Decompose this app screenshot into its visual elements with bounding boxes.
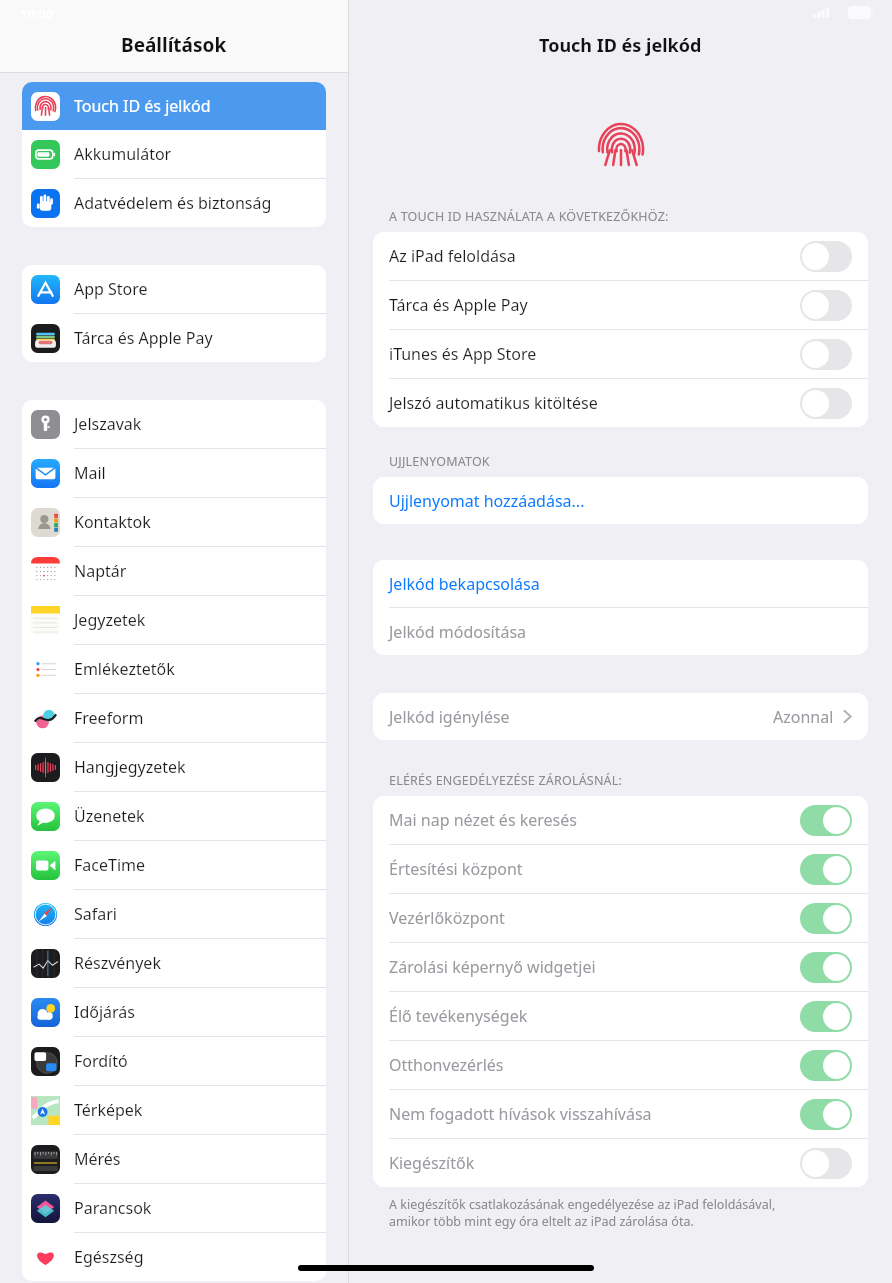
button[interactable]: Mérés xyxy=(22,1135,326,1184)
staticText: Jelszavak xyxy=(74,413,142,435)
staticText: Kontaktok xyxy=(74,511,151,533)
button[interactable]: On xyxy=(800,1099,852,1130)
button[interactable]: App Store xyxy=(22,265,326,314)
button[interactable]: Az iPad feloldása xyxy=(373,232,868,281)
button[interactable]: Off xyxy=(800,1148,852,1179)
button[interactable]: Freeform xyxy=(22,694,326,743)
staticText: Tárca és Apple Pay xyxy=(74,327,213,349)
button[interactable]: Ujjlenyomat hozzáadása... xyxy=(373,477,868,524)
button[interactable]: Akkumulátor xyxy=(22,130,326,179)
button[interactable]: Zárolási képernyő widgetjei xyxy=(373,943,868,992)
button[interactable]: On xyxy=(800,1001,852,1032)
button[interactable]: FaceTime xyxy=(22,841,326,890)
staticText: ELÉRÉS ENGEDÉLYEZÉSE ZÁROLÁSNÁL: xyxy=(389,772,623,789)
staticText: Ujjlenyomat hozzáadása... xyxy=(389,490,585,512)
button[interactable]: Otthonvezérlés xyxy=(373,1041,868,1090)
staticText: Azonnal xyxy=(773,706,834,728)
button[interactable]: Kiegészítők xyxy=(373,1139,868,1187)
staticText: Értesítési központ xyxy=(389,858,800,880)
button[interactable]: Mail xyxy=(22,449,326,498)
staticText: Jegyzetek xyxy=(74,609,146,631)
button[interactable]: Jelszó automatikus kitöltése xyxy=(373,379,868,427)
staticText: Tárca és Apple Pay xyxy=(389,294,800,316)
button[interactable]: Kontaktok xyxy=(22,498,326,547)
staticText: Mail xyxy=(74,462,106,484)
staticText: Mai nap nézet és keresés xyxy=(389,809,800,831)
staticText: Jelkód igénylése xyxy=(389,706,773,728)
staticText: Élő tevékenységek xyxy=(389,1005,800,1027)
button[interactable]: Off xyxy=(800,388,852,419)
staticText: Zárolási képernyő widgetjei xyxy=(389,956,800,978)
staticText: Üzenetek xyxy=(74,805,145,827)
staticText: Időjárás xyxy=(74,1001,135,1023)
staticText: Vezérlőközpont xyxy=(389,907,800,929)
staticText: Emlékeztetők xyxy=(74,658,175,680)
staticText: Kiegészítők xyxy=(389,1152,800,1174)
button[interactable]: Touch ID és jelkód xyxy=(22,82,326,130)
staticText: A TOUCH ID HASZNÁLATA A KÖVETKEZŐKHÖZ: xyxy=(389,208,669,225)
button[interactable]: On xyxy=(800,1050,852,1081)
button[interactable]: Nem fogadott hívások visszahívása xyxy=(373,1090,868,1139)
button[interactable]: On xyxy=(800,903,852,934)
button[interactable]: Emlékeztetők xyxy=(22,645,326,694)
staticText: Hangjegyzetek xyxy=(74,756,186,778)
button[interactable]: Egészség xyxy=(22,1233,326,1281)
staticText: iTunes és App Store xyxy=(389,343,800,365)
staticText: Térképek xyxy=(74,1099,143,1121)
button[interactable]: On xyxy=(800,952,852,983)
button[interactable]: Jelkód módosítása xyxy=(373,608,868,655)
button[interactable]: On xyxy=(800,805,852,836)
staticText: Adatvédelem és biztonság xyxy=(74,192,272,214)
button[interactable]: Fordító xyxy=(22,1037,326,1086)
staticText: Touch ID és jelkód xyxy=(539,33,702,58)
staticText: Mérés xyxy=(74,1148,121,1170)
staticText: Touch ID és jelkód xyxy=(74,95,211,117)
staticText: Az iPad feloldása xyxy=(389,245,800,267)
button[interactable]: Adatvédelem és biztonság xyxy=(22,179,326,227)
button[interactable]: Off xyxy=(800,290,852,321)
button[interactable]: Tárca és Apple Pay xyxy=(373,281,868,330)
staticText: Jelkód bekapcsolása xyxy=(389,573,540,595)
staticText: FaceTime xyxy=(74,854,145,876)
button[interactable]: Vezérlőközpont xyxy=(373,894,868,943)
button[interactable]: Jelkód bekapcsolása xyxy=(373,560,868,608)
staticText: Akkumulátor xyxy=(74,143,172,165)
button[interactable]: Tárca és Apple Pay xyxy=(22,314,326,362)
staticText: Részvények xyxy=(74,952,161,974)
button[interactable]: Térképek xyxy=(22,1086,326,1135)
button[interactable]: Jelkód igénylése xyxy=(373,693,868,740)
button[interactable]: Off xyxy=(800,339,852,370)
staticText: Jelszó automatikus kitöltése xyxy=(389,392,800,414)
staticText: Egészség xyxy=(74,1246,144,1268)
staticText: Safari xyxy=(74,903,117,925)
staticText: Jelkód módosítása xyxy=(389,621,527,643)
staticText: A kiegészítők csatlakozásának engedélyez… xyxy=(389,1196,776,1230)
staticText: Nem fogadott hívások visszahívása xyxy=(389,1103,800,1125)
button[interactable]: Üzenetek xyxy=(22,792,326,841)
button[interactable]: Safari xyxy=(22,890,326,939)
staticText: Beállítások xyxy=(121,32,227,58)
button[interactable]: Jelszavak xyxy=(22,400,326,449)
staticText: Otthonvezérlés xyxy=(389,1054,800,1076)
button[interactable]: Élő tevékenységek xyxy=(373,992,868,1041)
button[interactable]: On xyxy=(800,854,852,885)
button[interactable]: Időjárás xyxy=(22,988,326,1037)
staticText: Fordító xyxy=(74,1050,128,1072)
staticText: Parancsok xyxy=(74,1197,152,1219)
button[interactable]: Részvények xyxy=(22,939,326,988)
button[interactable]: iTunes és App Store xyxy=(373,330,868,379)
staticText: Freeform xyxy=(74,707,144,729)
button[interactable]: Hangjegyzetek xyxy=(22,743,326,792)
button[interactable]: Értesítési központ xyxy=(373,845,868,894)
staticText: Naptár xyxy=(74,560,127,582)
staticText: UJJLENYOMATOK xyxy=(389,453,490,470)
button[interactable]: Jegyzetek xyxy=(22,596,326,645)
button[interactable]: Off xyxy=(800,241,852,272)
button[interactable]: Parancsok xyxy=(22,1184,326,1233)
staticText: App Store xyxy=(74,278,148,300)
button[interactable]: Mai nap nézet és keresés xyxy=(373,796,868,845)
button[interactable]: Naptár xyxy=(22,547,326,596)
